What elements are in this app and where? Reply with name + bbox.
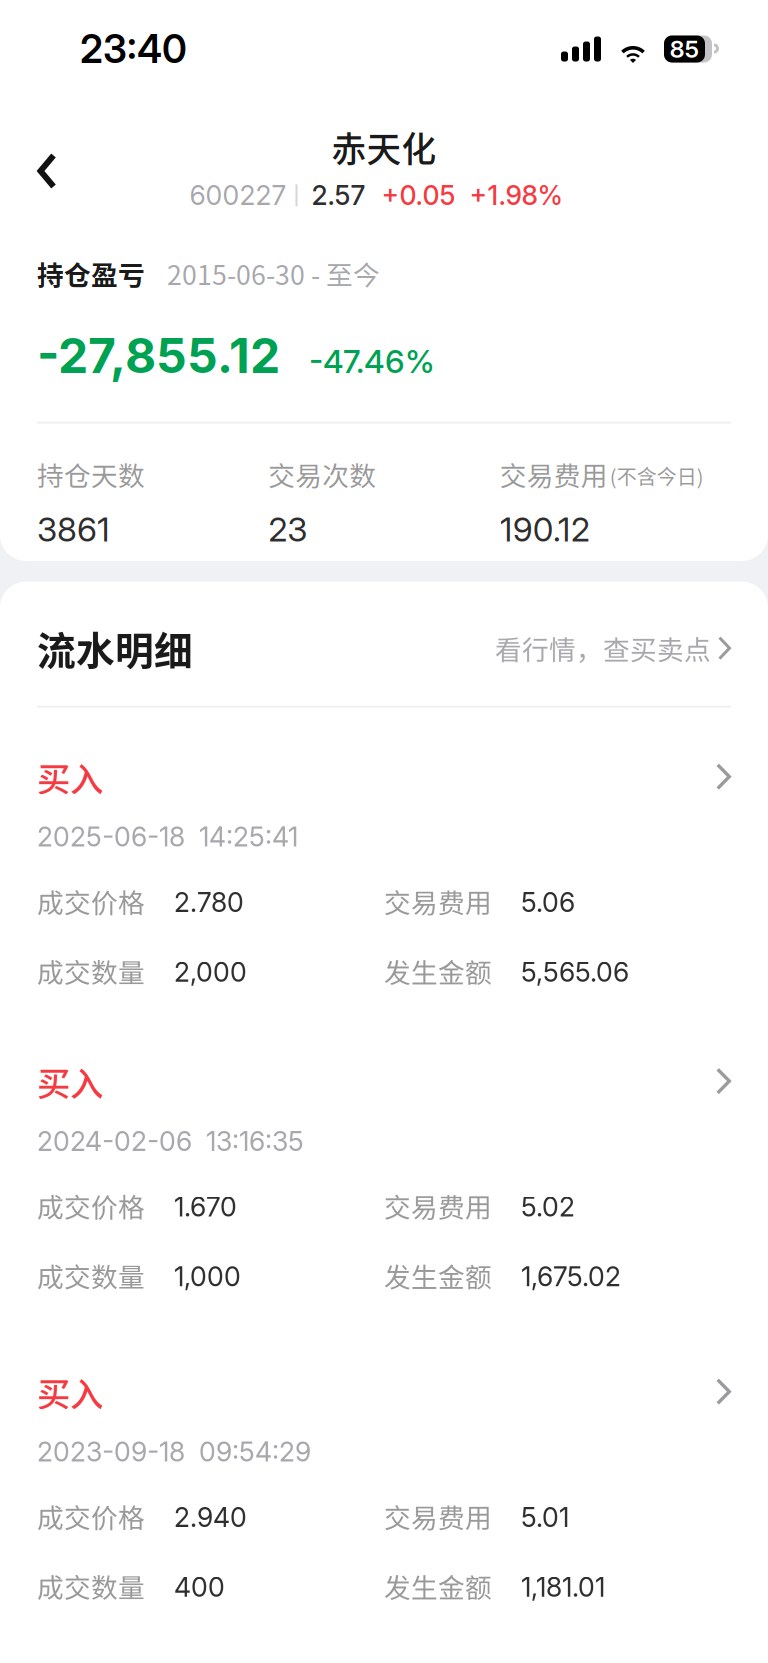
staticText: 成交价格 — [37, 1497, 145, 1535]
staticText: 发生金额 — [384, 1566, 492, 1605]
staticText: 2.57 — [311, 179, 365, 211]
staticText: 2024-02-06 13:16:35 — [37, 1125, 304, 1157]
staticText: 1,000 — [174, 1260, 241, 1293]
staticText: 成交数量 — [37, 1256, 145, 1295]
staticText: 5.02 — [521, 1191, 575, 1223]
staticText: 流水明细 — [37, 620, 193, 676]
staticText: 1.670 — [174, 1191, 237, 1223]
button[interactable]: 买入 — [0, 1368, 768, 1605]
staticText: 买入 — [37, 752, 103, 801]
staticText: 23 — [268, 509, 307, 550]
staticText: 交易费用 — [384, 882, 492, 920]
staticText: 2,000 — [174, 956, 247, 988]
staticText: 持仓盈亏 — [37, 254, 145, 293]
staticText: 1,181.01 — [521, 1571, 605, 1603]
button[interactable]: 买入 — [0, 753, 768, 990]
staticText: 成交数量 — [37, 951, 145, 990]
staticText: 23:40 — [80, 26, 187, 72]
staticText: 2023-09-18 09:54:29 — [37, 1436, 311, 1468]
staticText: 5.01 — [521, 1501, 569, 1533]
staticText: 发生金额 — [384, 1256, 492, 1295]
staticText: 5.06 — [521, 886, 575, 918]
staticText: 交易费用 — [384, 1186, 492, 1225]
staticText: 赤天化 — [331, 122, 436, 172]
staticText: 买入 — [37, 1057, 103, 1105]
staticText: 2.940 — [174, 1501, 247, 1533]
staticText: 5,565.06 — [521, 956, 629, 988]
staticText: 交易费用 — [500, 455, 608, 493]
staticText: 190.12 — [500, 509, 590, 550]
staticText: 1,675.02 — [521, 1260, 621, 1293]
staticText: 成交价格 — [37, 882, 145, 920]
staticText: -27,855.12 — [37, 327, 280, 385]
staticText: -47.46% — [309, 342, 435, 381]
staticText: 2015-06-30 - 至今 — [167, 254, 380, 293]
staticText: 发生金额 — [384, 951, 492, 990]
button[interactable]: 流水明细 — [0, 621, 768, 676]
button[interactable]: 买入 — [0, 1057, 768, 1295]
staticText: 交易费用 — [384, 1497, 492, 1535]
staticText: 85 — [669, 34, 699, 63]
staticText: 持仓天数 — [37, 455, 145, 493]
staticText: (不含今日) — [610, 461, 704, 490]
staticText: 3861 — [37, 509, 110, 550]
staticText: 2025-06-18 14:25:41 — [37, 821, 298, 853]
staticText: 交易次数 — [268, 455, 376, 493]
staticText: 成交价格 — [37, 1186, 145, 1225]
staticText: 400 — [174, 1571, 225, 1603]
staticText: +1.98% — [469, 179, 562, 211]
staticText: +0.05 — [381, 179, 455, 211]
staticText: 2.780 — [174, 886, 244, 918]
staticText: 成交数量 — [37, 1566, 145, 1605]
staticText: 看行情，查买卖点 — [495, 629, 711, 667]
button[interactable]: Back — [0, 131, 94, 211]
staticText: 买入 — [37, 1367, 103, 1416]
staticText: 600227 — [189, 179, 286, 211]
